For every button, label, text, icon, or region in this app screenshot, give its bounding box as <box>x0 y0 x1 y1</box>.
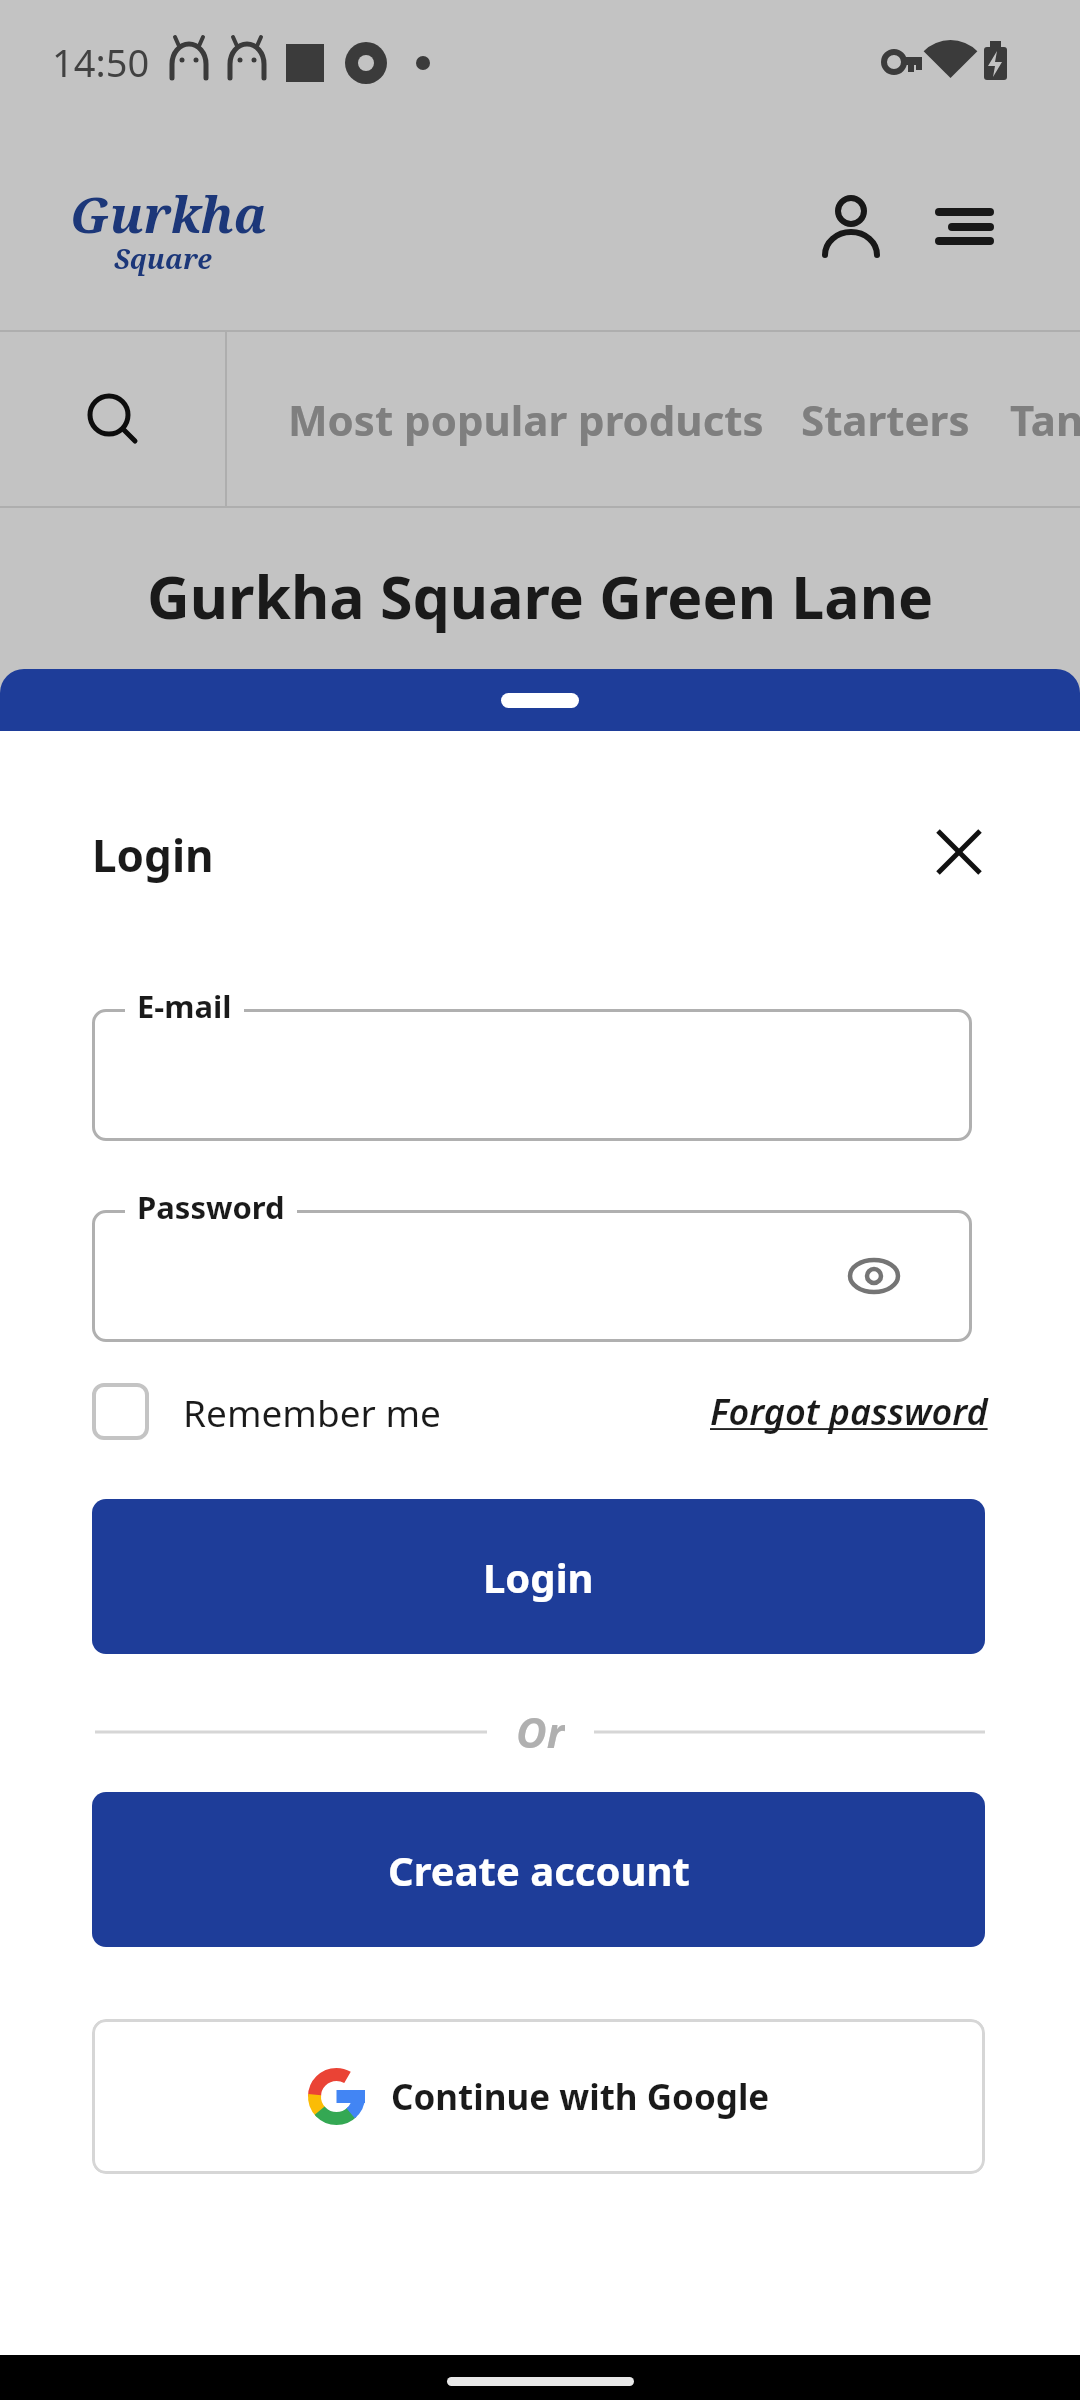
staticText: Gurkha Square Green Lane <box>147 556 934 636</box>
button[interactable]: Tandoori dishes <box>1010 391 1080 448</box>
staticText: Login <box>483 1550 594 1604</box>
button[interactable]: Starters <box>801 391 970 448</box>
button[interactable] <box>92 1210 972 1342</box>
staticText: Square <box>114 240 212 277</box>
staticText: Password <box>137 1186 285 1228</box>
staticText: Remember me <box>183 1387 441 1437</box>
button[interactable] <box>928 190 1000 262</box>
staticText: 14:50 <box>52 36 150 88</box>
button[interactable]: Most popular products <box>288 391 764 448</box>
button[interactable] <box>815 190 887 262</box>
button[interactable]: Remember me <box>92 1383 441 1440</box>
button[interactable]: Forgot password <box>710 1387 988 1436</box>
button[interactable]: Continue with Google <box>92 2019 985 2174</box>
button[interactable]: Login <box>92 1499 985 1654</box>
button[interactable] <box>0 330 226 508</box>
staticText: Or <box>516 1703 565 1749</box>
staticText: Login <box>92 825 214 885</box>
button[interactable] <box>92 1009 972 1141</box>
staticText: Continue with Google <box>391 2073 770 2121</box>
staticText: Create account <box>388 1843 690 1897</box>
staticText: Gurkha <box>70 180 267 248</box>
button[interactable] <box>921 814 997 890</box>
staticText: E-mail <box>137 985 232 1027</box>
button[interactable]: Create account <box>92 1792 985 1947</box>
